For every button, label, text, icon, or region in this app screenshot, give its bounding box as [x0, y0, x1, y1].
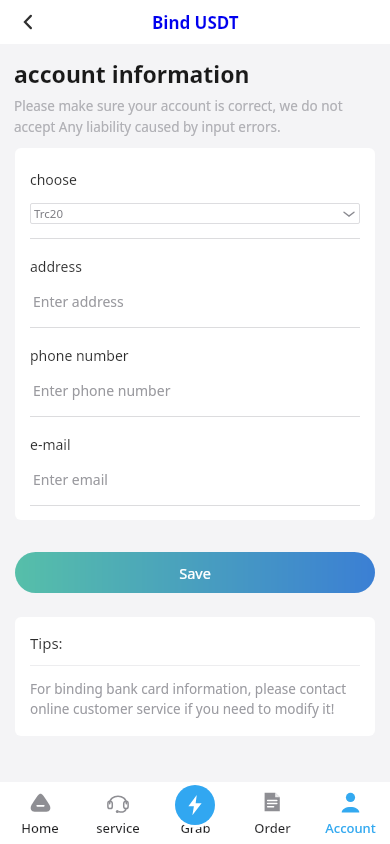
button[interactable]: Enter phone number — [30, 381, 360, 400]
button[interactable]: Grab — [175, 785, 215, 825]
staticText: account information — [14, 58, 250, 89]
staticText: Home — [21, 819, 59, 837]
staticText: Save — [179, 563, 211, 583]
button[interactable]: Trc20 — [30, 203, 360, 224]
staticText: Order — [254, 819, 291, 837]
staticText: choose — [30, 170, 77, 189]
staticText: Account — [325, 819, 376, 837]
staticText: phone number — [30, 346, 129, 365]
staticText: Grab — [180, 819, 211, 837]
staticText: Bind USDT — [152, 11, 239, 34]
staticText: Enter address — [33, 292, 124, 311]
button[interactable]: Account — [313, 786, 387, 841]
button[interactable]: Enter address — [30, 292, 360, 311]
button[interactable]: Enter email — [30, 470, 360, 489]
staticText: Enter phone number — [33, 381, 171, 400]
staticText: e-mail — [30, 435, 71, 454]
button[interactable]: Back — [10, 4, 46, 40]
button[interactable]: Save — [15, 552, 375, 593]
staticText: Enter email — [33, 470, 108, 489]
button[interactable]: service — [81, 786, 155, 841]
staticText: Please make sure your account is correct… — [14, 97, 376, 136]
staticText: Trc20 — [34, 206, 64, 222]
staticText: For binding bank card information, pleas… — [30, 680, 360, 718]
button[interactable]: Order — [235, 786, 309, 841]
staticText: Tips: — [30, 633, 63, 653]
button[interactable]: Home — [3, 786, 77, 841]
staticText: service — [96, 819, 140, 837]
button[interactable]: Grab — [158, 786, 232, 841]
staticText: address — [30, 257, 82, 276]
